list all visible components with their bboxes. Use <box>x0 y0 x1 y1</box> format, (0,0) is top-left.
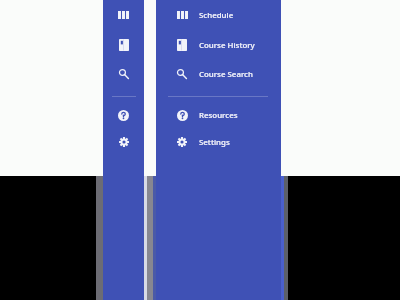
button[interactable]: Schedule <box>103 1 144 29</box>
button[interactable]: Course History <box>103 31 144 59</box>
button[interactable]: Resources <box>156 102 281 128</box>
staticText: Schedule <box>199 10 234 21</box>
button[interactable]: Settings <box>156 129 281 155</box>
staticText: Resources <box>199 110 238 121</box>
staticText: Course Search <box>199 69 253 80</box>
button[interactable]: Schedule <box>156 2 281 28</box>
button[interactable]: Course History <box>156 32 281 58</box>
button[interactable]: Course Search <box>156 61 281 87</box>
staticText: Course History <box>199 40 255 51</box>
button[interactable]: Settings <box>103 128 144 156</box>
button[interactable]: Course Search <box>103 60 144 88</box>
button[interactable]: Resources <box>103 101 144 129</box>
staticText: Settings <box>199 137 230 148</box>
